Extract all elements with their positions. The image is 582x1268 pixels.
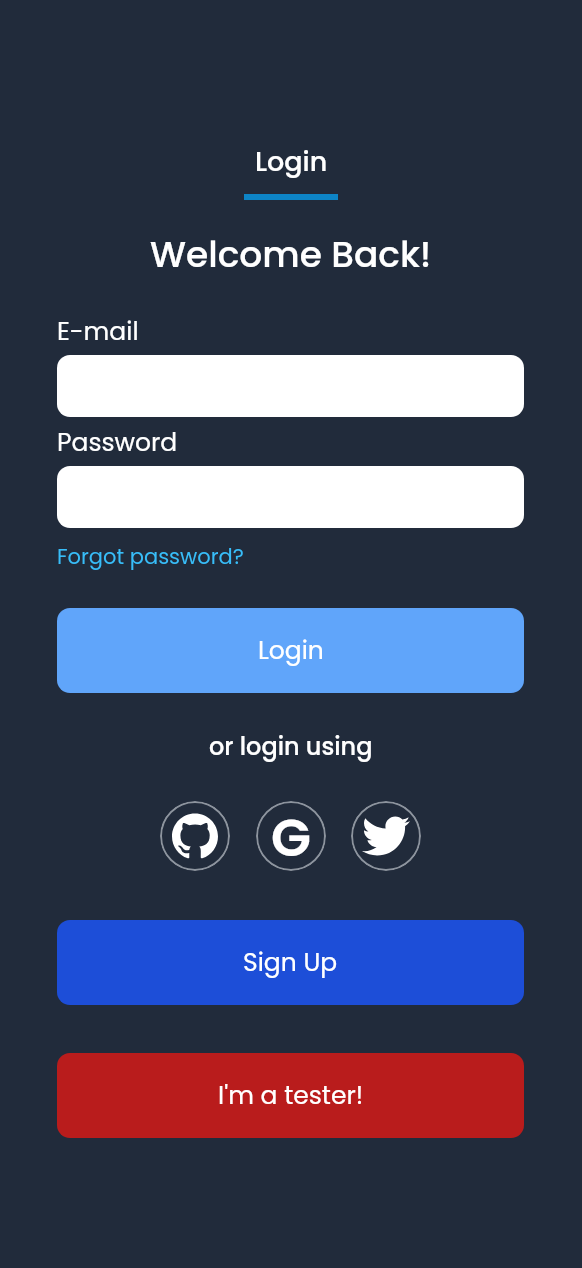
staticText: or login using [209, 730, 373, 764]
button[interactable] [351, 801, 421, 871]
staticText: E-mail [57, 314, 139, 349]
button[interactable]: I'm a tester! [57, 1053, 524, 1138]
button[interactable] [160, 801, 230, 871]
button[interactable]: Sign Up [57, 920, 524, 1005]
staticText: Login [255, 143, 328, 181]
staticText: G [271, 801, 311, 871]
button[interactable] [57, 466, 524, 528]
staticText: Forgot password? [57, 542, 244, 571]
button[interactable]: G [256, 801, 326, 871]
button[interactable]: Forgot password? [57, 526, 244, 586]
staticText: I'm a tester! [218, 1078, 364, 1113]
staticText: Welcome Back! [150, 229, 432, 279]
staticText: Login [258, 633, 324, 668]
staticText: Password [57, 425, 178, 460]
button[interactable]: Login [57, 608, 524, 693]
button[interactable] [57, 355, 524, 417]
staticText: Sign Up [243, 945, 338, 980]
